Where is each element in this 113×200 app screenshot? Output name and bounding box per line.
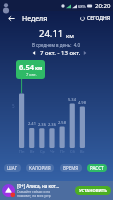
staticText: 5.34: [68, 97, 76, 102]
button[interactable]: Back: [0, 11, 22, 26]
staticText: Вт: [30, 149, 35, 154]
staticText: км: [35, 65, 43, 72]
staticText: 7 окт.: [26, 72, 37, 77]
staticText: [0+] Алиса, на кот...: [17, 183, 60, 189]
staticText: Скачайте сейчас и по: [17, 190, 51, 194]
staticText: Неделя: [22, 14, 48, 24]
staticText: Пт: [60, 149, 65, 154]
staticText: Ср: [40, 149, 45, 154]
staticText: Сб: [70, 149, 75, 154]
staticText: Чт: [50, 149, 55, 154]
staticText: КАЛОРИЯ: [29, 165, 51, 171]
staticText: Вс: [80, 149, 85, 154]
staticText: В среднем в день: 4.0: [32, 42, 81, 48]
staticText: 4.98: [78, 100, 86, 105]
staticText: 2.41: [28, 121, 36, 126]
staticText: 5: [12, 103, 15, 109]
button[interactable]: Next week: [80, 48, 90, 58]
button[interactable]: СЕГОДНЯ: [76, 12, 113, 25]
button[interactable]: ШАГ: [4, 164, 21, 172]
staticText: поможет, на всех устр: [17, 194, 51, 198]
staticText: ШАГ: [7, 165, 18, 171]
button[interactable]: РАССТ: [87, 164, 107, 172]
staticText: СЕГОДНЯ: [87, 15, 111, 22]
staticText: ВРЕМЯ: [63, 165, 79, 171]
staticText: РАССТ: [90, 165, 104, 171]
staticText: 6.54: [19, 62, 34, 72]
button[interactable]: ВРЕМЯ: [60, 164, 82, 172]
staticText: 2.58: [58, 120, 66, 125]
button[interactable]: КАЛОРИЯ: [26, 164, 54, 172]
staticText: УСТАНОВИТЬ: [79, 188, 107, 194]
staticText: 7 окт. - 13 окт.: [40, 49, 81, 57]
staticText: 2.36: [48, 122, 56, 127]
staticText: км: [66, 32, 74, 40]
staticText: 20:20: [95, 2, 111, 10]
staticText: 24.11: [39, 27, 64, 40]
staticText: 68%: [78, 4, 86, 9]
button[interactable]: Previous week: [29, 48, 39, 58]
button[interactable]: УСТАНОВИТЬ: [75, 186, 111, 195]
staticText: Пн: [19, 149, 25, 154]
staticText: 2.36: [38, 122, 46, 127]
